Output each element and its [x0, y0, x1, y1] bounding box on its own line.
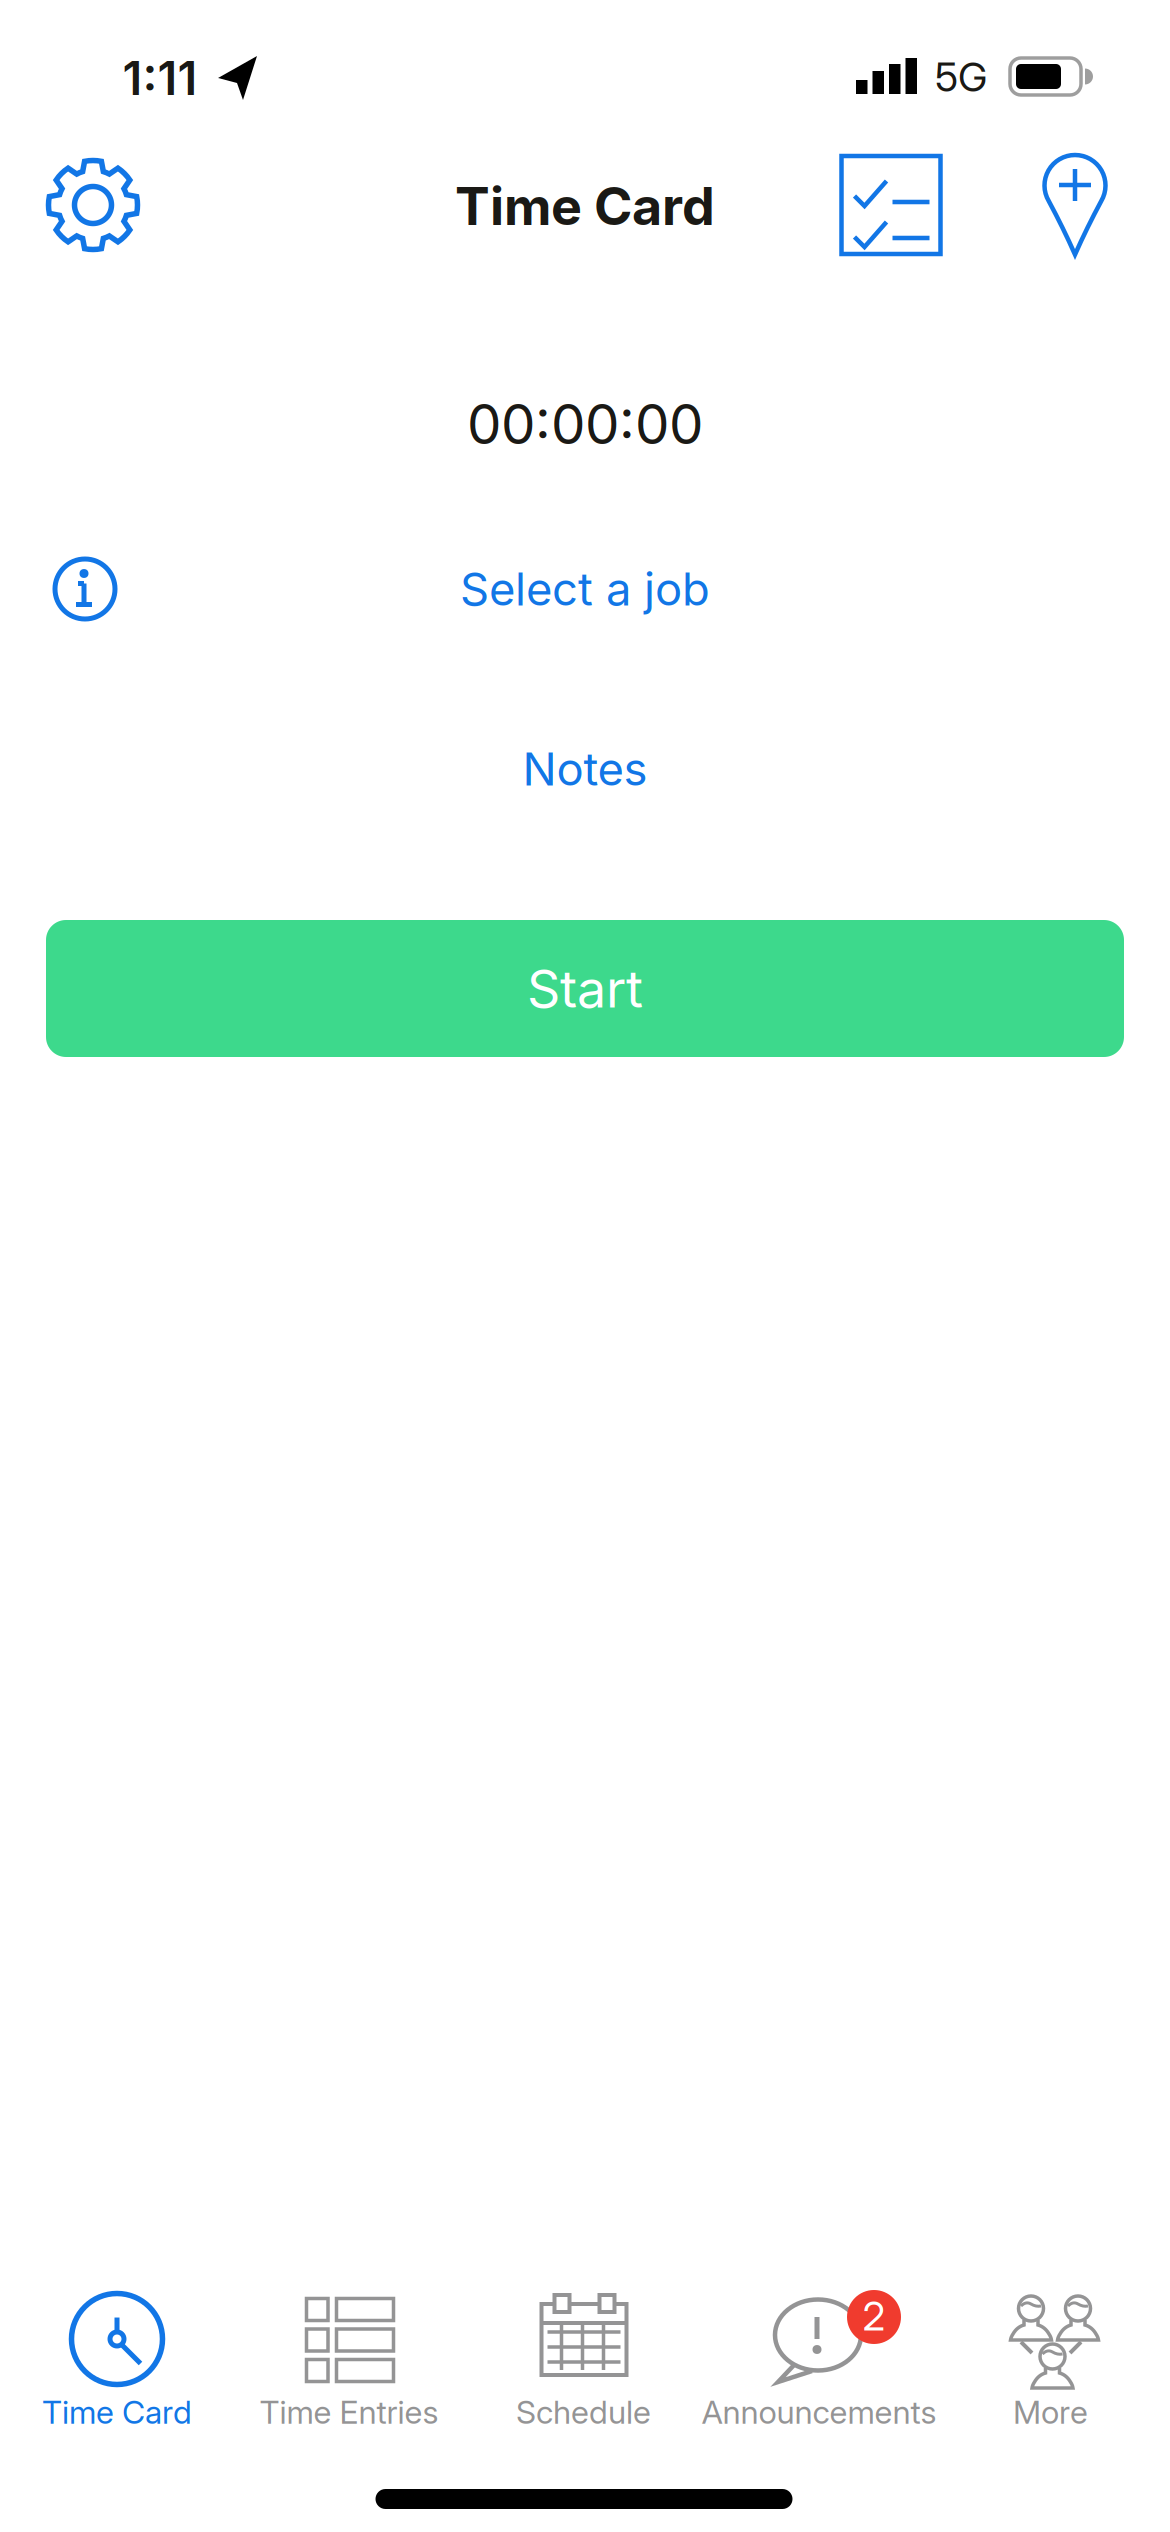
staticText: Start: [527, 958, 643, 1019]
staticText: 2: [862, 2292, 885, 2340]
button[interactable]: Settings: [47, 159, 139, 251]
staticText: Notes: [522, 742, 647, 796]
button[interactable]: Tasks: [841, 156, 940, 254]
button[interactable]: 2: [687, 2288, 951, 2428]
button[interactable]: Time Card: [32, 2288, 202, 2428]
staticText: 1:11: [122, 50, 197, 106]
staticText: Announcements: [701, 2393, 936, 2431]
staticText: Time Entries: [259, 2393, 438, 2431]
staticText: More: [1013, 2393, 1088, 2431]
staticText: Select a job: [460, 562, 710, 616]
staticText: 00:00:00: [467, 392, 703, 456]
button[interactable]: Notes: [522, 742, 647, 796]
button[interactable]: Schedule: [503, 2288, 663, 2428]
staticText: Time Card: [42, 2393, 192, 2431]
staticText: Schedule: [516, 2393, 651, 2431]
button[interactable]: Start: [46, 920, 1124, 1057]
button[interactable]: Add location: [1042, 152, 1108, 257]
button[interactable]: Time Entries: [249, 2288, 449, 2428]
staticText: Time Card: [455, 175, 715, 237]
staticText: 5G: [935, 53, 987, 101]
button[interactable]: Job info: [54, 558, 116, 620]
button[interactable]: Select a job: [460, 562, 710, 616]
button[interactable]: More: [990, 2288, 1110, 2428]
